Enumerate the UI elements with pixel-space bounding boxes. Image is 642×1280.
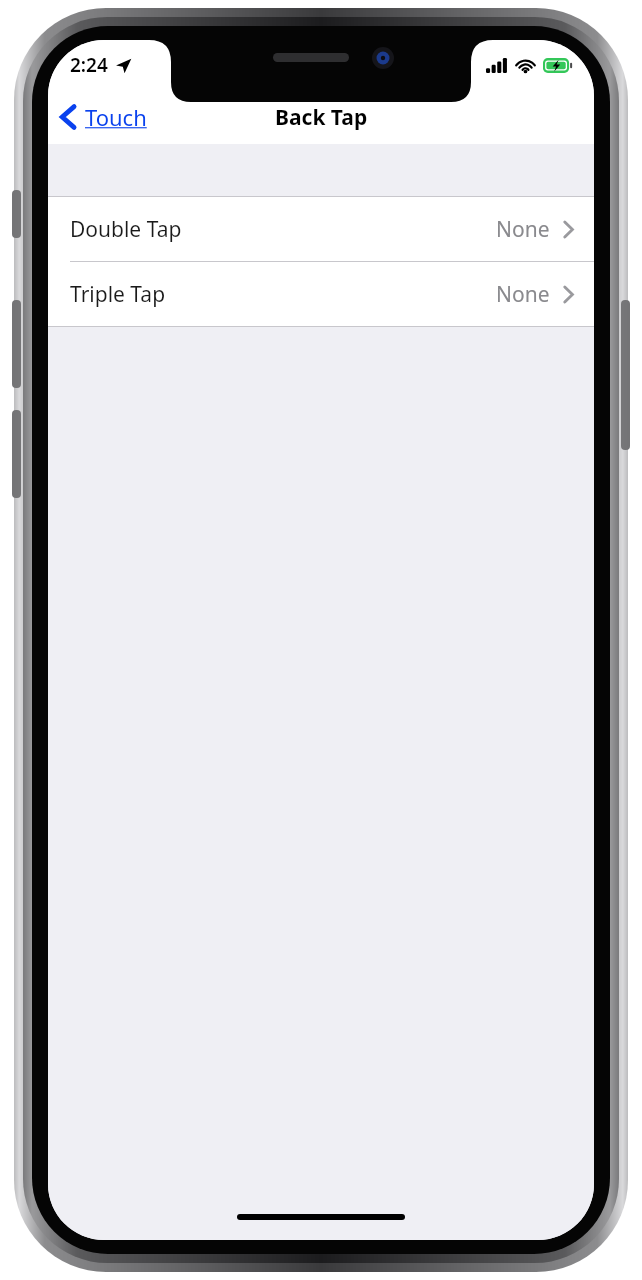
staticText: Triple Tap [70,280,166,309]
button[interactable]: Triple Tap [48,262,594,326]
staticText: None [496,280,550,309]
staticText: Back Tap [275,103,368,132]
staticText: Touch [85,102,147,132]
staticText: 2:24 [70,52,108,78]
button[interactable]: Touch [48,96,157,138]
staticText: Double Tap [70,215,182,244]
button[interactable]: Double Tap [48,197,594,261]
staticText: None [496,215,550,244]
